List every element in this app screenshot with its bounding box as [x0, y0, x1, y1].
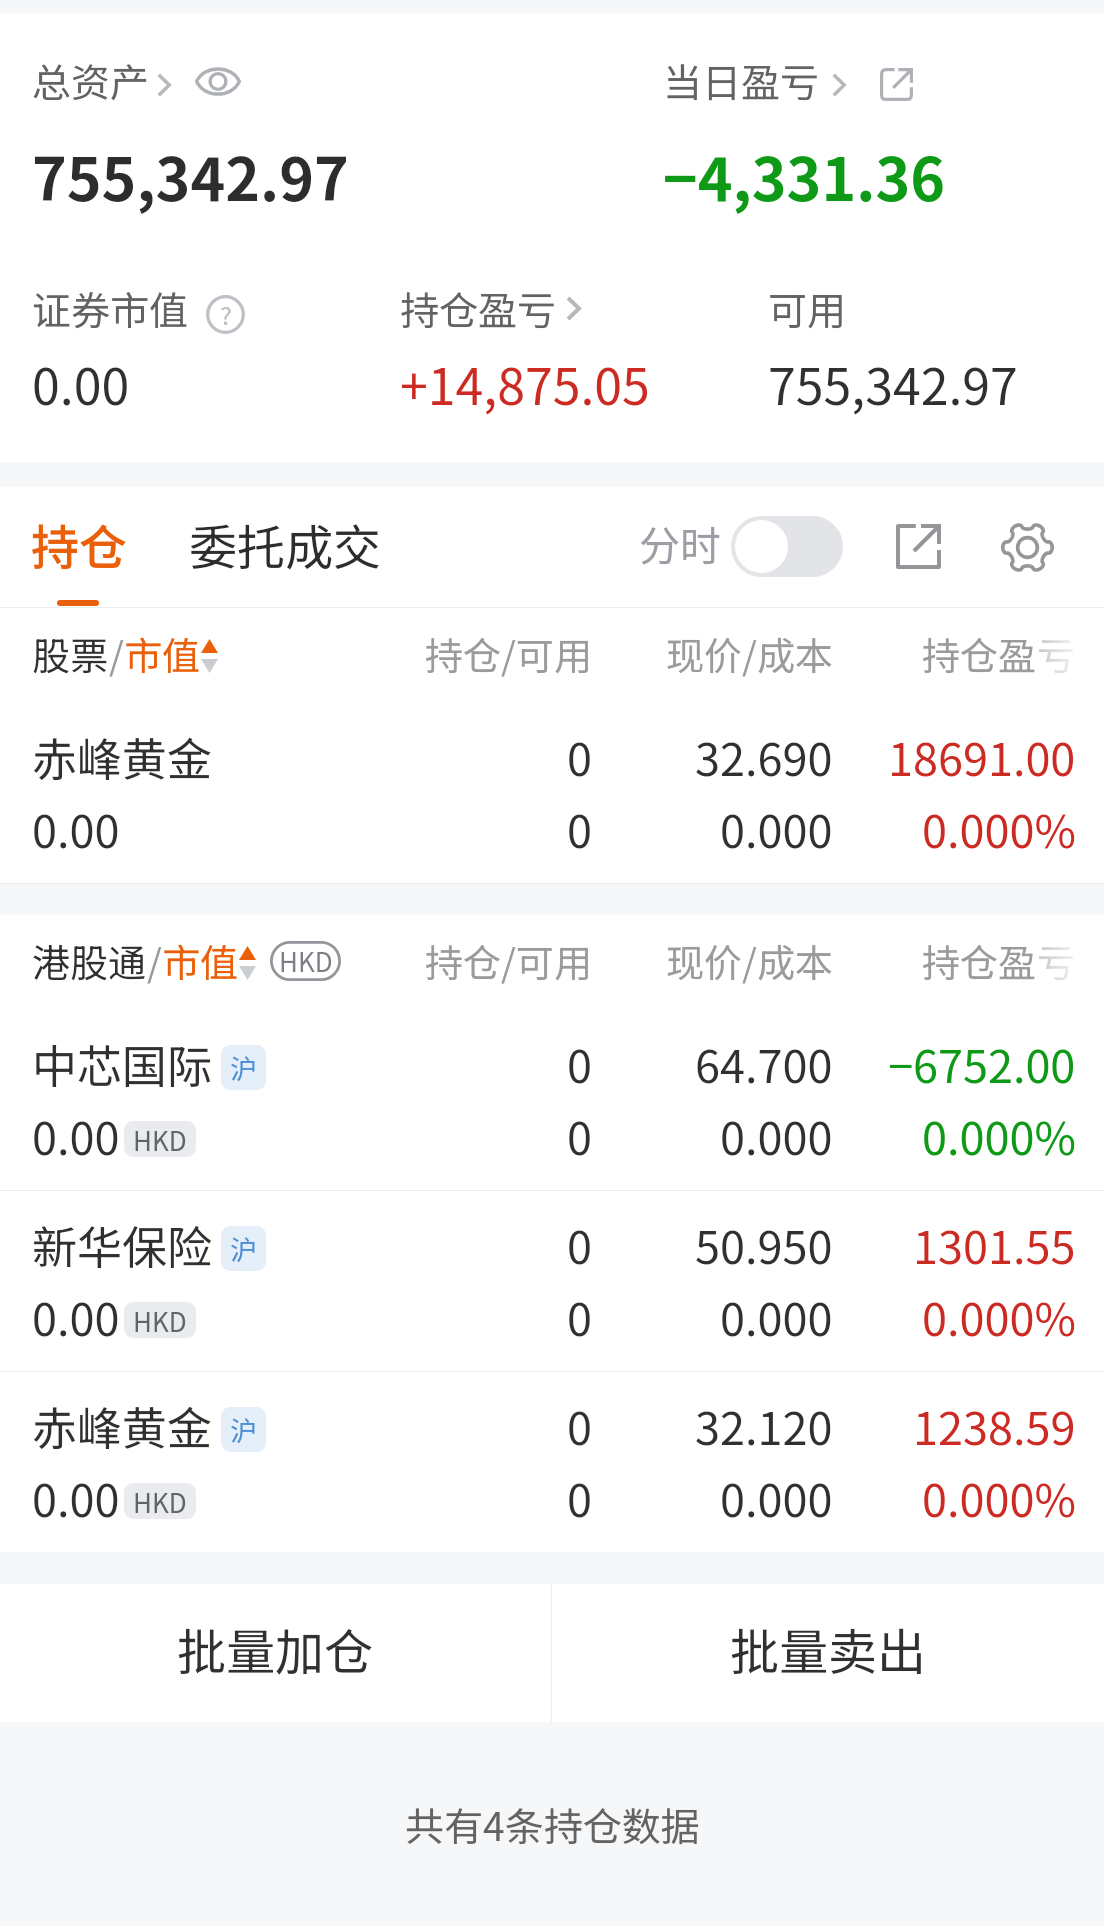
staticText: 0.000: [720, 1284, 833, 1349]
staticText: 批量加仓: [177, 1613, 374, 1684]
staticText: 现价/成本: [666, 626, 833, 681]
staticText: 沪: [230, 1410, 257, 1449]
staticText: 持仓盈亏: [400, 280, 557, 336]
staticText: 亏: [1037, 626, 1076, 681]
staticText: 持仓盈: [922, 933, 1037, 988]
staticText: HKD: [279, 942, 333, 980]
staticText: 赤峰黄金: [32, 724, 213, 789]
staticText: −6752.00: [888, 1031, 1076, 1096]
staticText: 0: [567, 1284, 592, 1349]
button[interactable]: 赤峰黄金: [0, 1372, 1104, 1552]
staticText: 0.00: [32, 1465, 120, 1530]
staticText: 市值: [124, 626, 201, 681]
staticText: 0.000%: [922, 796, 1076, 861]
staticText: 0: [567, 724, 592, 789]
staticText: 当日盈亏: [663, 52, 820, 108]
staticText: 持仓: [31, 509, 128, 579]
staticText: 0.000: [720, 1465, 833, 1530]
staticText: 0.000: [720, 796, 833, 861]
staticText: 沪: [230, 1229, 257, 1268]
button[interactable]: 批量卖出: [552, 1584, 1104, 1722]
staticText: 32.690: [695, 724, 833, 789]
button[interactable]: 总资产: [32, 52, 241, 108]
staticText: HKD: [133, 1302, 187, 1338]
staticText: 755,342.97: [768, 347, 1018, 419]
staticText: 委托成交: [189, 509, 382, 579]
staticText: 0.000%: [922, 1284, 1076, 1349]
button[interactable]: 批量加仓: [0, 1584, 551, 1722]
staticText: 0: [567, 1212, 592, 1277]
button[interactable]: 持仓: [10, 487, 122, 607]
staticText: /: [109, 626, 124, 681]
staticText: 持仓盈: [922, 626, 1037, 681]
button[interactable]: 新华保险: [0, 1191, 1104, 1371]
staticText: 32.120: [695, 1393, 833, 1458]
staticText: 新华保险: [32, 1212, 213, 1277]
staticText: 0: [567, 1393, 592, 1458]
other: Open in new window: [896, 524, 941, 569]
staticText: 赤峰黄金: [32, 1393, 213, 1458]
staticText: 0: [567, 1103, 592, 1168]
staticText: 18691.00: [888, 724, 1076, 789]
staticText: 批量卖出: [730, 1613, 927, 1684]
staticText: 分时: [639, 513, 721, 572]
staticText: ?: [220, 296, 232, 332]
staticText: 50.950: [695, 1212, 833, 1277]
staticText: 0: [567, 1031, 592, 1096]
staticText: 亏: [1037, 933, 1076, 988]
button[interactable]: 当日盈亏: [663, 52, 913, 108]
staticText: 0.00: [32, 796, 120, 861]
button[interactable]: 持仓盈亏: [400, 280, 581, 336]
other: Toggle balance visibility: [195, 66, 241, 97]
staticText: 市值: [162, 933, 239, 988]
other: Help: [206, 295, 245, 334]
staticText: 股票: [32, 626, 109, 681]
staticText: 证券市值: [32, 280, 189, 336]
button[interactable]: 赤峰黄金: [0, 703, 1104, 883]
button[interactable]: 委托成交: [168, 487, 398, 607]
staticText: 持仓/可用: [425, 626, 592, 681]
staticText: HKD: [133, 1121, 187, 1157]
staticText: 1238.59: [913, 1393, 1076, 1458]
staticText: 64.700: [695, 1031, 833, 1096]
staticText: /: [147, 933, 162, 988]
staticText: 1301.55: [913, 1212, 1076, 1277]
staticText: 755,342.97: [32, 133, 349, 218]
other: Settings: [1001, 521, 1054, 574]
staticText: 中芯国际: [32, 1031, 213, 1096]
staticText: 0.00: [32, 1103, 120, 1168]
staticText: 0: [567, 1465, 592, 1530]
staticText: 港股通: [32, 933, 147, 988]
staticText: 0.000: [720, 1103, 833, 1168]
staticText: 总资产: [32, 52, 150, 108]
staticText: +14,875.05: [400, 347, 650, 419]
staticText: 0: [567, 796, 592, 861]
button[interactable]: Toggle time chart: [731, 516, 843, 577]
other: Open in new window: [880, 68, 913, 101]
button[interactable]: Open in new window: [874, 502, 962, 590]
staticText: 0.000%: [922, 1103, 1076, 1168]
button[interactable]: Settings: [983, 503, 1071, 591]
staticText: 现价/成本: [666, 933, 833, 988]
staticText: 可用: [768, 280, 847, 336]
staticText: 共有4条持仓数据: [405, 1796, 700, 1852]
staticText: HKD: [133, 1483, 187, 1519]
staticText: 0.000%: [922, 1465, 1076, 1530]
staticText: 0.00: [32, 1284, 120, 1349]
staticText: 沪: [230, 1048, 257, 1087]
staticText: 0.00: [32, 347, 130, 419]
staticText: 持仓/可用: [425, 933, 592, 988]
button[interactable]: 中芯国际: [0, 1010, 1104, 1190]
staticText: −4,331.36: [663, 133, 946, 218]
